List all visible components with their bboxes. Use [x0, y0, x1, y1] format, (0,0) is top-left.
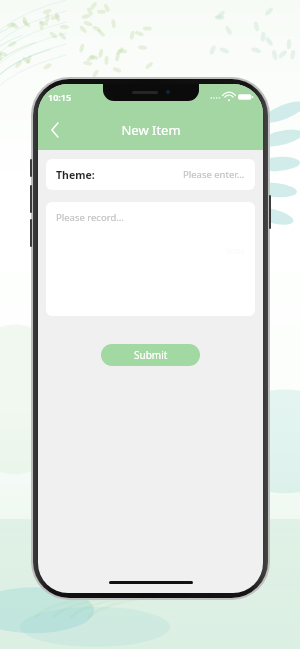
- staticText: New Item: [121, 121, 181, 139]
- staticText: Please record...: [56, 211, 124, 224]
- button[interactable]: Submit: [101, 344, 200, 366]
- button[interactable]: Theme:: [46, 159, 255, 190]
- staticText: Please enter...: [183, 168, 245, 181]
- staticText: 10:15: [48, 91, 72, 103]
- staticText: Theme:: [56, 168, 95, 182]
- staticText: Submit: [134, 348, 168, 362]
- button[interactable]: Please record...: [46, 202, 255, 316]
- button[interactable]: Back: [38, 113, 72, 147]
